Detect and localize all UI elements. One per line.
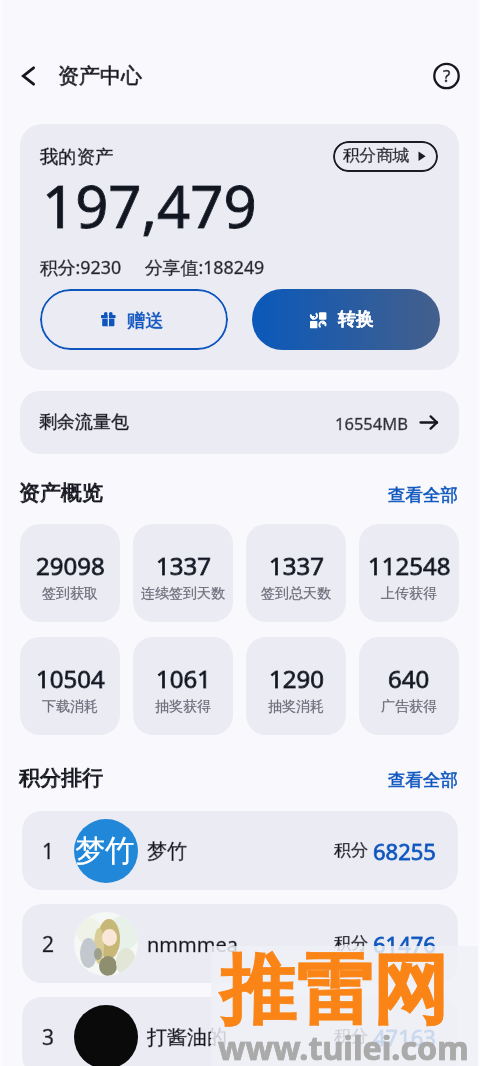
staticText: 抽奖消耗 [268, 698, 324, 716]
staticText: 资产概览 [19, 480, 103, 506]
staticText: 积分商城 [343, 145, 410, 166]
staticText: 1337 [156, 549, 211, 582]
staticText: 1061 [156, 662, 211, 695]
staticText: 10504 [36, 662, 105, 695]
staticText: 2 [42, 930, 55, 959]
staticText: 积分排行 [19, 765, 103, 791]
staticText: 剩余流量包 [39, 411, 129, 434]
staticText: 上传获得 [381, 585, 437, 603]
staticText: 3 [42, 1023, 55, 1052]
staticText: 转换 [338, 308, 374, 331]
button[interactable]: 查看全部 [378, 473, 458, 517]
staticText: 下载消耗 [42, 698, 98, 716]
staticText: 86.5 [127, 308, 164, 333]
button[interactable]: 1290 [246, 637, 346, 735]
button[interactable]: 1061 [133, 637, 233, 735]
staticText: www.tuilei.com [218, 1026, 469, 1066]
staticText: 1337 [269, 549, 324, 582]
staticText: 640 [388, 662, 430, 695]
staticText: 抽奖获得 [155, 698, 211, 716]
staticText: 2 [42, 930, 55, 959]
staticText: 197,479 [42, 166, 257, 245]
staticText: 积分 [334, 933, 368, 954]
staticText: 签到总天数 [261, 585, 331, 603]
staticText: 47163 [373, 1022, 436, 1052]
staticText: 分享值:188249 [145, 255, 265, 279]
staticText: 查看全部 [388, 484, 458, 506]
staticText: 查看全部 [388, 769, 458, 791]
staticText: 打酱油的 [147, 1025, 227, 1050]
staticText: 签到获取 [42, 585, 98, 603]
staticText: 10504 [36, 662, 105, 695]
staticText: 赠送 [127, 309, 164, 332]
staticText: 广告获得 [381, 698, 437, 716]
staticText: 112548 [368, 549, 451, 582]
staticText: 68255 [373, 836, 436, 866]
staticText: 47163 [373, 1022, 436, 1052]
staticText: 签到总天数 [261, 585, 331, 603]
button[interactable]: Back [8, 55, 50, 97]
staticText: 积分 [334, 840, 368, 861]
staticText: 下载消耗 [42, 698, 98, 716]
staticText: 签到获取 [42, 585, 98, 603]
staticText: 1337 [156, 549, 211, 582]
staticText: 连续签到天数 [141, 585, 225, 603]
staticText: 推雷网 [220, 943, 448, 1039]
staticText: 资产概览 [19, 480, 103, 506]
staticText: nmmmea [147, 931, 238, 958]
staticText: 积分 [334, 1026, 368, 1047]
button[interactable]: Help [426, 56, 467, 97]
staticText: 我的资产 [40, 145, 114, 168]
button[interactable]: 29098 [20, 524, 120, 622]
button[interactable]: 3 [22, 997, 458, 1066]
staticText: 赠送 [127, 309, 164, 332]
staticText: ? [443, 64, 451, 87]
staticText: 29098 [36, 549, 105, 582]
button[interactable]: 85 [252, 289, 440, 350]
staticText: 梦竹 [147, 839, 187, 864]
staticText: 积分 [334, 840, 368, 861]
button[interactable]: 112548 [359, 524, 459, 622]
staticText: 积分 [334, 933, 368, 954]
button[interactable] [333, 141, 438, 172]
button[interactable]: 1337 [133, 524, 233, 622]
staticText: www.tuilei.com [218, 1026, 469, 1066]
staticText: nmmmea [147, 931, 238, 958]
button[interactable]: 1337 [246, 524, 346, 622]
staticText: 640 [388, 662, 430, 695]
staticText: 资产中心 [58, 63, 142, 89]
button[interactable]: 86.5 [40, 289, 228, 350]
staticText: 查看全部 [388, 769, 458, 791]
staticText: 推雷网 [220, 943, 448, 1039]
staticText: 梦竹 [75, 832, 135, 870]
staticText: 分享值:188249 [145, 255, 265, 279]
staticText: 29098 [36, 549, 105, 582]
staticText: 积分商城 [343, 145, 410, 166]
staticText: 梦竹 [147, 839, 187, 864]
staticText: 16554MB [335, 412, 408, 434]
button[interactable]: 640 [359, 637, 459, 735]
button[interactable]: 2 [22, 904, 458, 983]
staticText: 剩余流量包 [39, 411, 129, 434]
staticText: ? [443, 64, 451, 87]
staticText: 抽奖获得 [155, 698, 211, 716]
button[interactable]: 剩余流量包 [20, 391, 459, 454]
staticText: 积分 [334, 1026, 368, 1047]
staticText: 广告获得 [381, 698, 437, 716]
staticText: 积分:9230 [40, 255, 122, 279]
staticText: 3 [42, 1023, 55, 1052]
staticText: 1061 [156, 662, 211, 695]
staticText: 16554MB [335, 412, 408, 434]
button[interactable]: 查看全部 [378, 758, 458, 802]
staticText: 打酱油的 [147, 1025, 227, 1050]
staticText: 上传获得 [381, 585, 437, 603]
staticText: 61476 [373, 929, 436, 959]
staticText: 1 [42, 837, 55, 866]
staticText: 68255 [373, 836, 436, 866]
staticText: 我的资产 [40, 145, 114, 168]
staticText: 61476 [373, 929, 436, 959]
staticText: 1290 [269, 662, 324, 695]
button[interactable]: 1 [22, 811, 458, 890]
button[interactable]: 10504 [20, 637, 120, 735]
staticText: 资产中心 [58, 63, 142, 89]
